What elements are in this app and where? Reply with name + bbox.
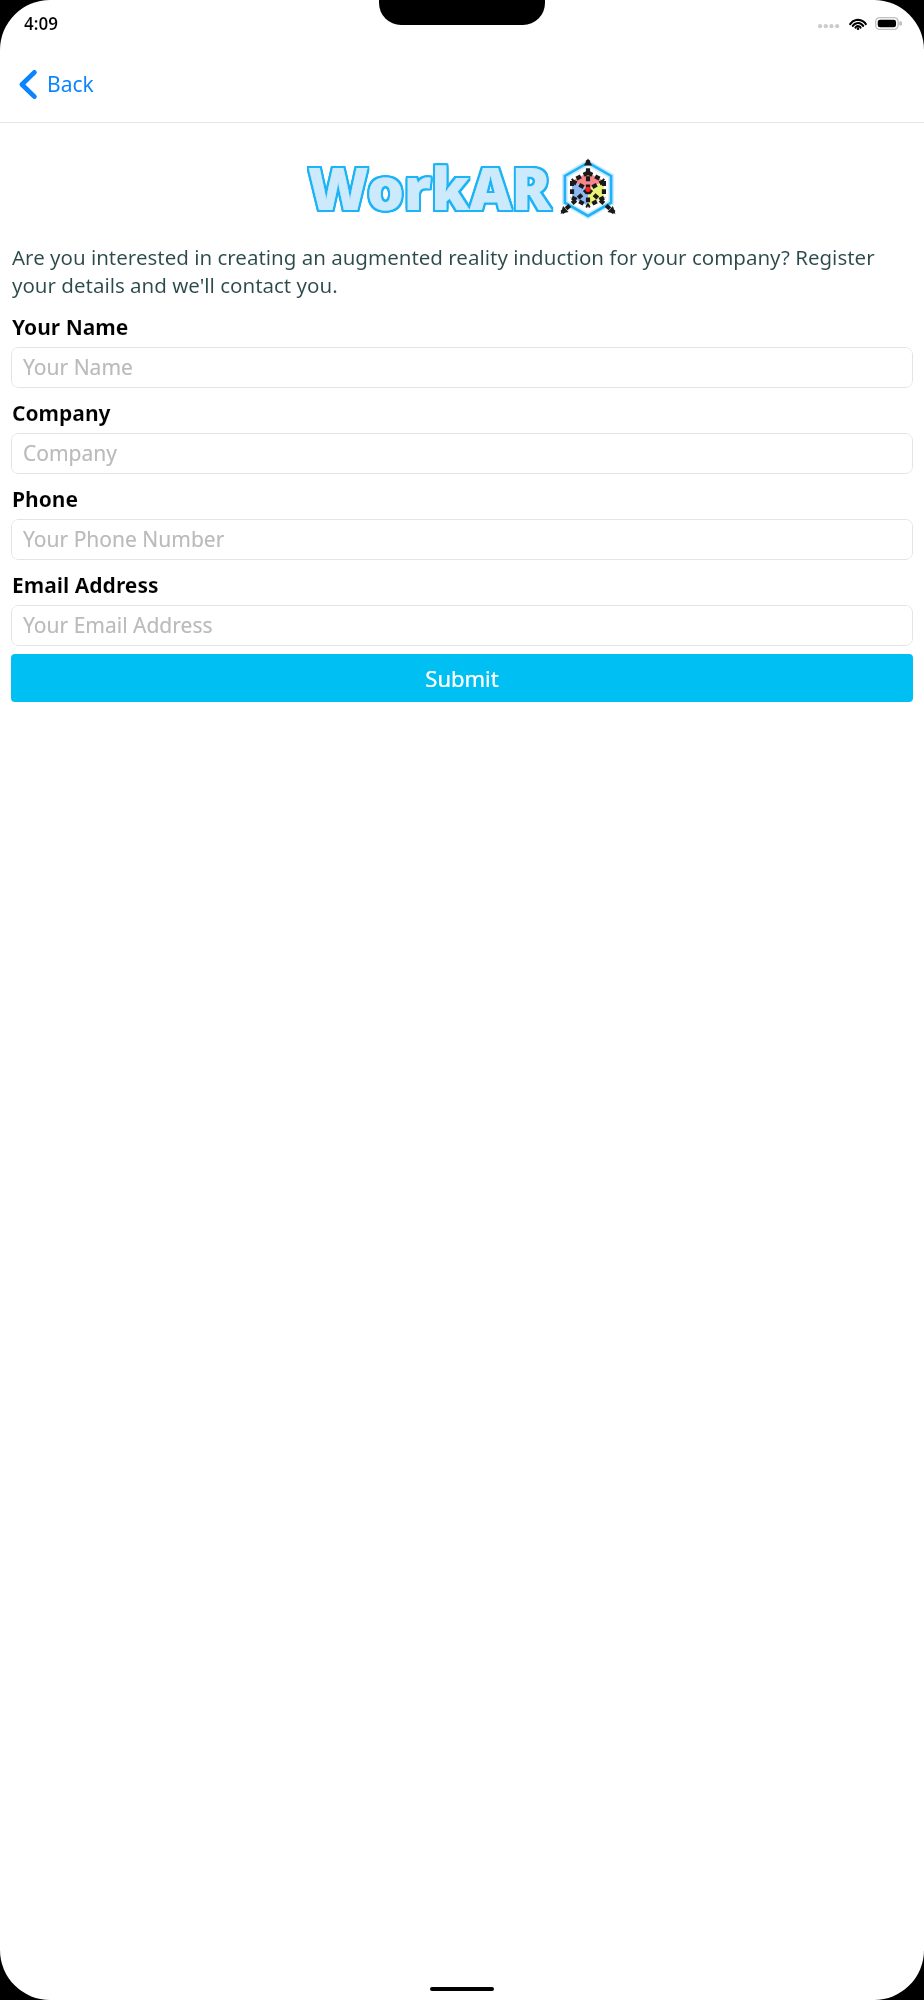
staticText: Email Address: [12, 571, 159, 600]
staticText: Your Name: [23, 353, 133, 382]
staticText: WorkAR: [310, 148, 553, 227]
staticText: Company: [12, 399, 111, 428]
staticText: Your Email Address: [23, 611, 213, 640]
staticText: 4:09: [24, 12, 58, 35]
staticText: WorkAR: [307, 150, 550, 229]
staticText: WorkAR: [306, 146, 549, 225]
staticText: WorkAR: [310, 147, 553, 226]
staticText: WorkAR: [308, 146, 551, 225]
staticText: WorkAR: [306, 149, 549, 228]
staticText: Your Phone Number: [23, 525, 225, 554]
button[interactable]: Your Email Address: [11, 605, 913, 646]
staticText: Company: [23, 439, 117, 468]
staticText: Submit: [425, 663, 499, 693]
staticText: WorkAR: [309, 150, 552, 229]
staticText: WorkAR: [310, 149, 553, 228]
staticText: WorkAR: [308, 148, 551, 227]
button[interactable]: Your Name: [11, 347, 913, 388]
staticText: WorkAR: [308, 150, 551, 229]
staticText: WorkAR: [306, 148, 549, 227]
staticText: Your Name: [12, 313, 129, 342]
staticText: WorkAR: [310, 146, 553, 225]
staticText: Phone: [12, 485, 79, 514]
staticText: WorkAR: [307, 146, 550, 225]
staticText: WorkAR: [310, 150, 553, 229]
staticText: Back: [47, 70, 94, 99]
staticText: WorkAR: [306, 147, 549, 226]
button[interactable]: Your Phone Number: [11, 519, 913, 560]
button[interactable]: Company: [11, 433, 913, 474]
staticText: WorkAR: [306, 150, 549, 229]
staticText: WorkAR: [309, 146, 552, 225]
button[interactable]: Submit: [11, 654, 913, 702]
staticText: Are you interested in creating an augmen…: [12, 243, 911, 299]
button[interactable]: Back: [0, 60, 112, 109]
